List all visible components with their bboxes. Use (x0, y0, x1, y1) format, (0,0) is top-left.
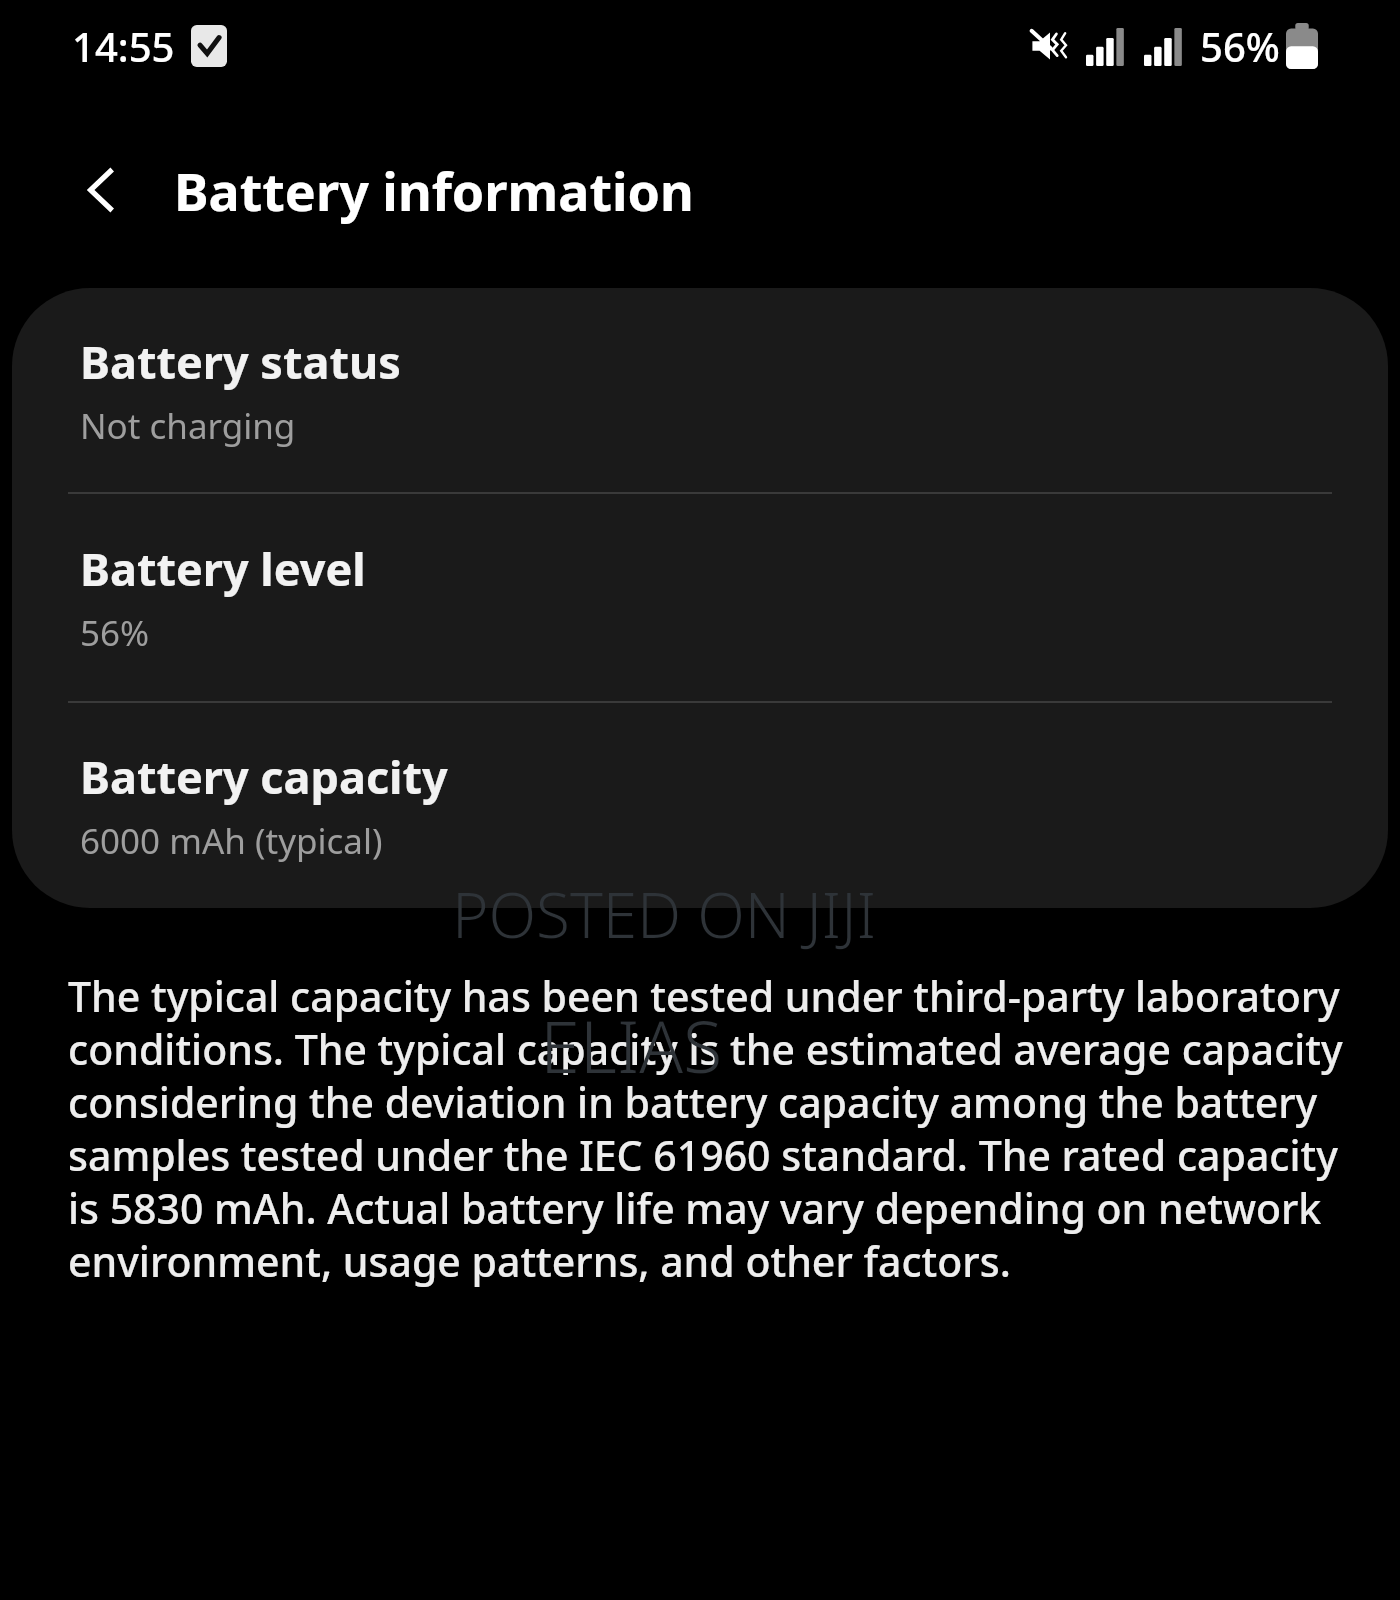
staticText: The typical capacity has been tested und… (68, 968, 1344, 1289)
staticText: 6000 mAh (typical) (80, 817, 383, 865)
staticText: 56% (80, 609, 150, 657)
button[interactable]: Battery status (12, 288, 1388, 492)
staticText: Battery capacity (80, 746, 448, 807)
button[interactable]: Battery capacity (12, 703, 1388, 907)
staticText: 14:55 (72, 19, 175, 73)
staticText: Battery information (174, 155, 694, 226)
button[interactable]: Back (54, 142, 150, 238)
staticText: 56% (1200, 19, 1280, 73)
staticText: ELIAS (540, 996, 723, 1094)
staticText: POSTED ON JIJI (452, 872, 876, 956)
staticText: Not charging (80, 402, 296, 450)
staticText: Battery level (80, 538, 366, 599)
staticText: Battery status (80, 331, 401, 392)
button[interactable]: Battery level (12, 494, 1388, 701)
